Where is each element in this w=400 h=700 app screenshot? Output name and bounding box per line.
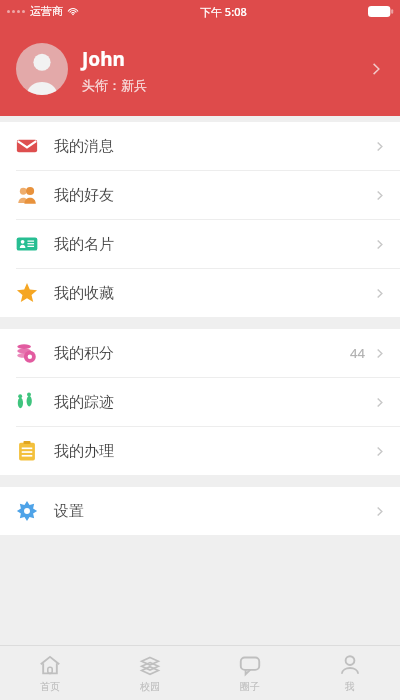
button[interactable]: 我的好友 [0, 171, 400, 219]
staticText: 我的积分 [54, 344, 350, 363]
button[interactable]: 我的积分 [0, 329, 400, 377]
staticText: John [82, 46, 125, 72]
staticText: 运营商 [30, 4, 63, 18]
button[interactable]: 我的收藏 [0, 269, 400, 317]
staticText: 我 [345, 680, 355, 693]
button[interactable]: 我的踪迹 [0, 378, 400, 426]
staticText: 我的名片 [54, 235, 373, 254]
button[interactable]: 校园 [100, 646, 200, 700]
staticText: 圈子 [240, 680, 260, 693]
staticText: 我的收藏 [54, 284, 373, 303]
staticText: 校园 [140, 680, 160, 693]
staticText: 我的消息 [54, 137, 373, 156]
button[interactable]: 设置 [0, 487, 400, 535]
staticText: 我的办理 [54, 442, 373, 461]
button[interactable]: John [0, 22, 400, 116]
staticText: 44 [350, 344, 365, 362]
staticText: 首页 [40, 680, 60, 693]
staticText: 我的好友 [54, 186, 373, 205]
staticText: 我的踪迹 [54, 393, 373, 412]
button[interactable]: 我的消息 [0, 122, 400, 170]
staticText: 头衔：新兵 [82, 77, 147, 93]
staticText: 设置 [54, 502, 373, 521]
staticText: 下午 5:08 [200, 4, 247, 19]
button[interactable]: 我 [300, 646, 400, 700]
button[interactable]: 我的办理 [0, 427, 400, 475]
button[interactable]: 我的名片 [0, 220, 400, 268]
button[interactable]: 圈子 [200, 646, 300, 700]
button[interactable]: 首页 [0, 646, 100, 700]
